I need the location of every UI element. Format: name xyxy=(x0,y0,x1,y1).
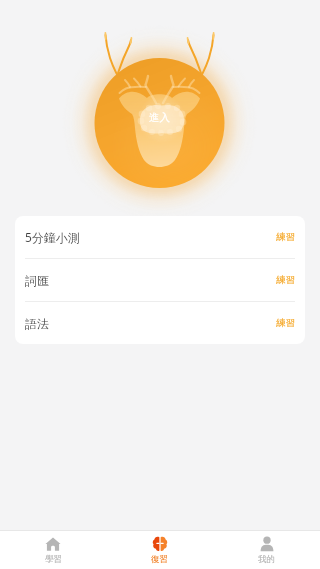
button[interactable]: 進入 xyxy=(0,0,320,216)
staticText: 詞匯 xyxy=(25,273,49,288)
button[interactable]: 學習 xyxy=(0,531,106,569)
button[interactable]: 語法 xyxy=(15,302,305,344)
button[interactable]: 詞匯 xyxy=(15,259,305,301)
staticText: 學習 xyxy=(45,554,62,565)
staticText: 我的 xyxy=(258,554,275,565)
staticText: 5分鐘小測 xyxy=(25,229,80,245)
button[interactable]: 我的 xyxy=(213,531,320,569)
staticText: 復習 xyxy=(151,554,168,565)
staticText: 練習 xyxy=(276,274,295,286)
staticText: 練習 xyxy=(276,231,295,243)
staticText: 語法 xyxy=(25,316,49,331)
staticText: 練習 xyxy=(276,317,295,329)
button[interactable]: 復習 xyxy=(106,531,213,569)
button[interactable]: 5分鐘小測 xyxy=(15,216,305,258)
staticText: 進入 xyxy=(149,111,170,124)
